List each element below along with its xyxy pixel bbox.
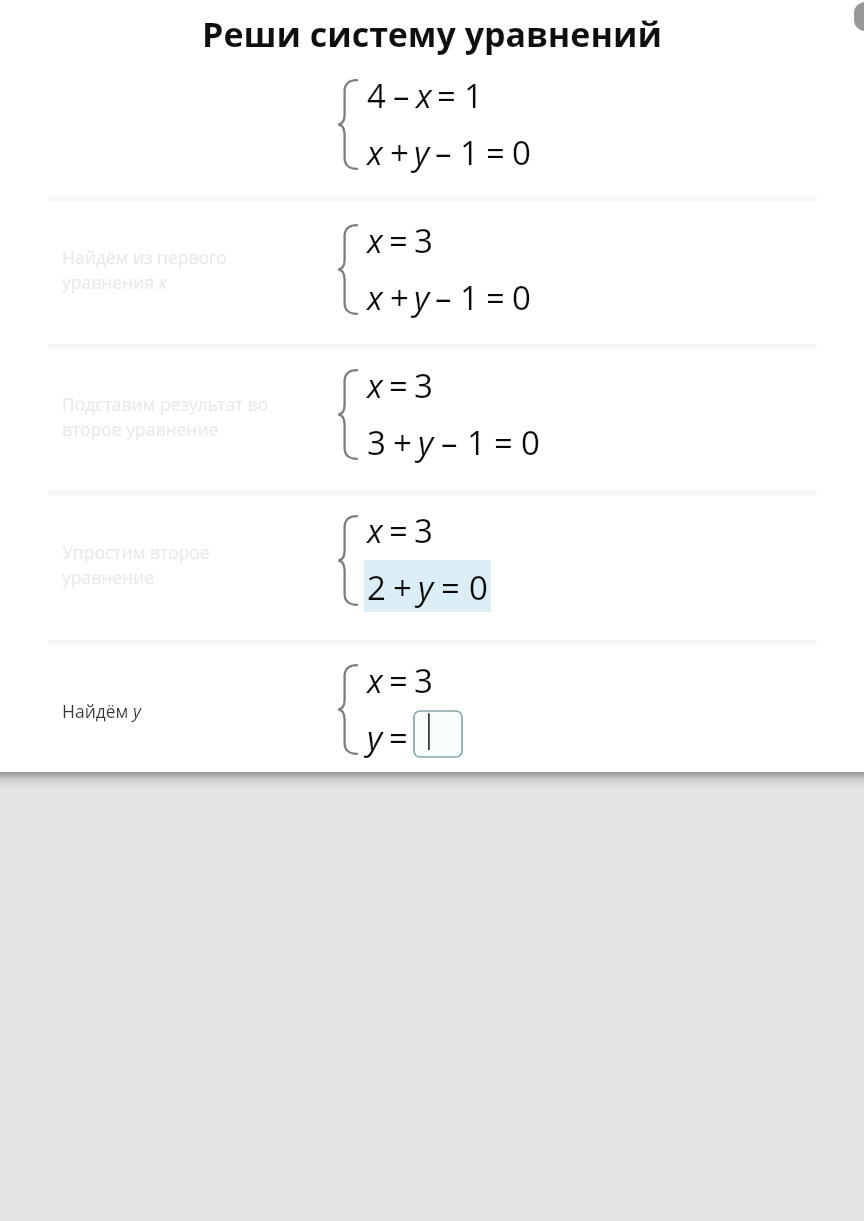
- button[interactable]: Подставим результат во второе уравнение: [0, 349, 864, 491]
- staticText: 1: [464, 73, 483, 118]
- staticText: 3: [414, 218, 433, 263]
- staticText: –: [393, 73, 410, 118]
- button[interactable]: Найдём y: [0, 645, 864, 772]
- staticText: 1: [460, 130, 479, 175]
- staticText: 0: [469, 565, 488, 610]
- staticText: y: [414, 130, 430, 175]
- staticText: y: [418, 420, 434, 465]
- staticText: x: [367, 658, 383, 703]
- staticText: =: [437, 73, 456, 118]
- staticText: x: [416, 73, 432, 118]
- staticText: 1: [460, 275, 479, 320]
- staticText: =: [494, 420, 513, 465]
- staticText: x: [367, 508, 383, 553]
- staticText: y: [418, 565, 434, 610]
- staticText: x: [367, 218, 383, 263]
- staticText: +: [390, 130, 409, 175]
- staticText: =: [486, 130, 505, 175]
- staticText: –: [435, 275, 452, 320]
- staticText: Найдём y: [62, 699, 142, 723]
- staticText: =: [389, 658, 408, 703]
- staticText: –: [435, 130, 452, 175]
- button[interactable]: Answer input field: [414, 711, 462, 757]
- staticText: =: [389, 715, 408, 760]
- staticText: =: [486, 275, 505, 320]
- staticText: +: [393, 420, 412, 465]
- staticText: 4: [367, 73, 386, 118]
- staticText: 2: [367, 565, 386, 610]
- staticText: =: [389, 218, 408, 263]
- staticText: +: [390, 275, 409, 320]
- staticText: 0: [512, 275, 531, 320]
- staticText: x: [367, 363, 383, 408]
- button[interactable]: Упростим второе уравнение: [0, 496, 864, 640]
- other: Scroll indicator: [844, 0, 864, 36]
- staticText: 0: [521, 420, 540, 465]
- staticText: 3: [414, 658, 433, 703]
- staticText: =: [389, 363, 408, 408]
- button[interactable]: Найдём из первого уравнения x: [0, 202, 864, 344]
- staticText: 3: [414, 508, 433, 553]
- staticText: 0: [512, 130, 531, 175]
- staticText: +: [393, 565, 412, 610]
- staticText: 3: [414, 363, 433, 408]
- staticText: –: [441, 420, 458, 465]
- staticText: 1: [467, 420, 486, 465]
- staticText: Реши систему уравнений: [0, 11, 864, 57]
- staticText: =: [441, 565, 460, 610]
- staticText: Упростим второе уравнение: [62, 540, 280, 589]
- staticText: Найдём из первого уравнения x: [62, 245, 280, 294]
- staticText: =: [389, 508, 408, 553]
- staticText: y: [414, 275, 430, 320]
- staticText: x: [367, 130, 383, 175]
- staticText: y: [367, 715, 383, 760]
- staticText: 3: [367, 420, 386, 465]
- staticText: Подставим результат во второе уравнение: [62, 392, 280, 441]
- staticText: x: [367, 275, 383, 320]
